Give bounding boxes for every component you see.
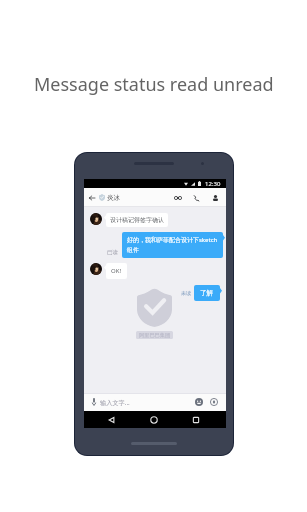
- button[interactable]: Call: [191, 188, 201, 207]
- button[interactable]: More options: [208, 395, 219, 409]
- staticText: OK!: [111, 267, 122, 275]
- staticText: 设计稿记得签字确认: [110, 216, 164, 224]
- button[interactable]: Contact info: [210, 188, 220, 207]
- button[interactable]: Emoji: [193, 395, 204, 409]
- staticText: 了解: [200, 289, 214, 297]
- button[interactable]: Back: [87, 189, 96, 207]
- staticText: Message status read unread: [34, 72, 274, 97]
- button[interactable]: Back: [100, 411, 122, 428]
- staticText: 炎冰: [107, 194, 121, 202]
- button[interactable]: Recent apps: [185, 411, 207, 428]
- staticText: 12:30: [205, 180, 221, 188]
- button[interactable]: Home: [143, 411, 165, 428]
- staticText: 好的，我和萨菲配合设计下sketch 组件: [127, 236, 218, 254]
- staticText: 输入文字...: [100, 398, 130, 406]
- staticText: 已读: [107, 249, 118, 256]
- staticText: 未读: [181, 290, 191, 296]
- button[interactable]: Video call: [171, 188, 184, 207]
- staticText: 阿里巴巴集团: [139, 332, 171, 339]
